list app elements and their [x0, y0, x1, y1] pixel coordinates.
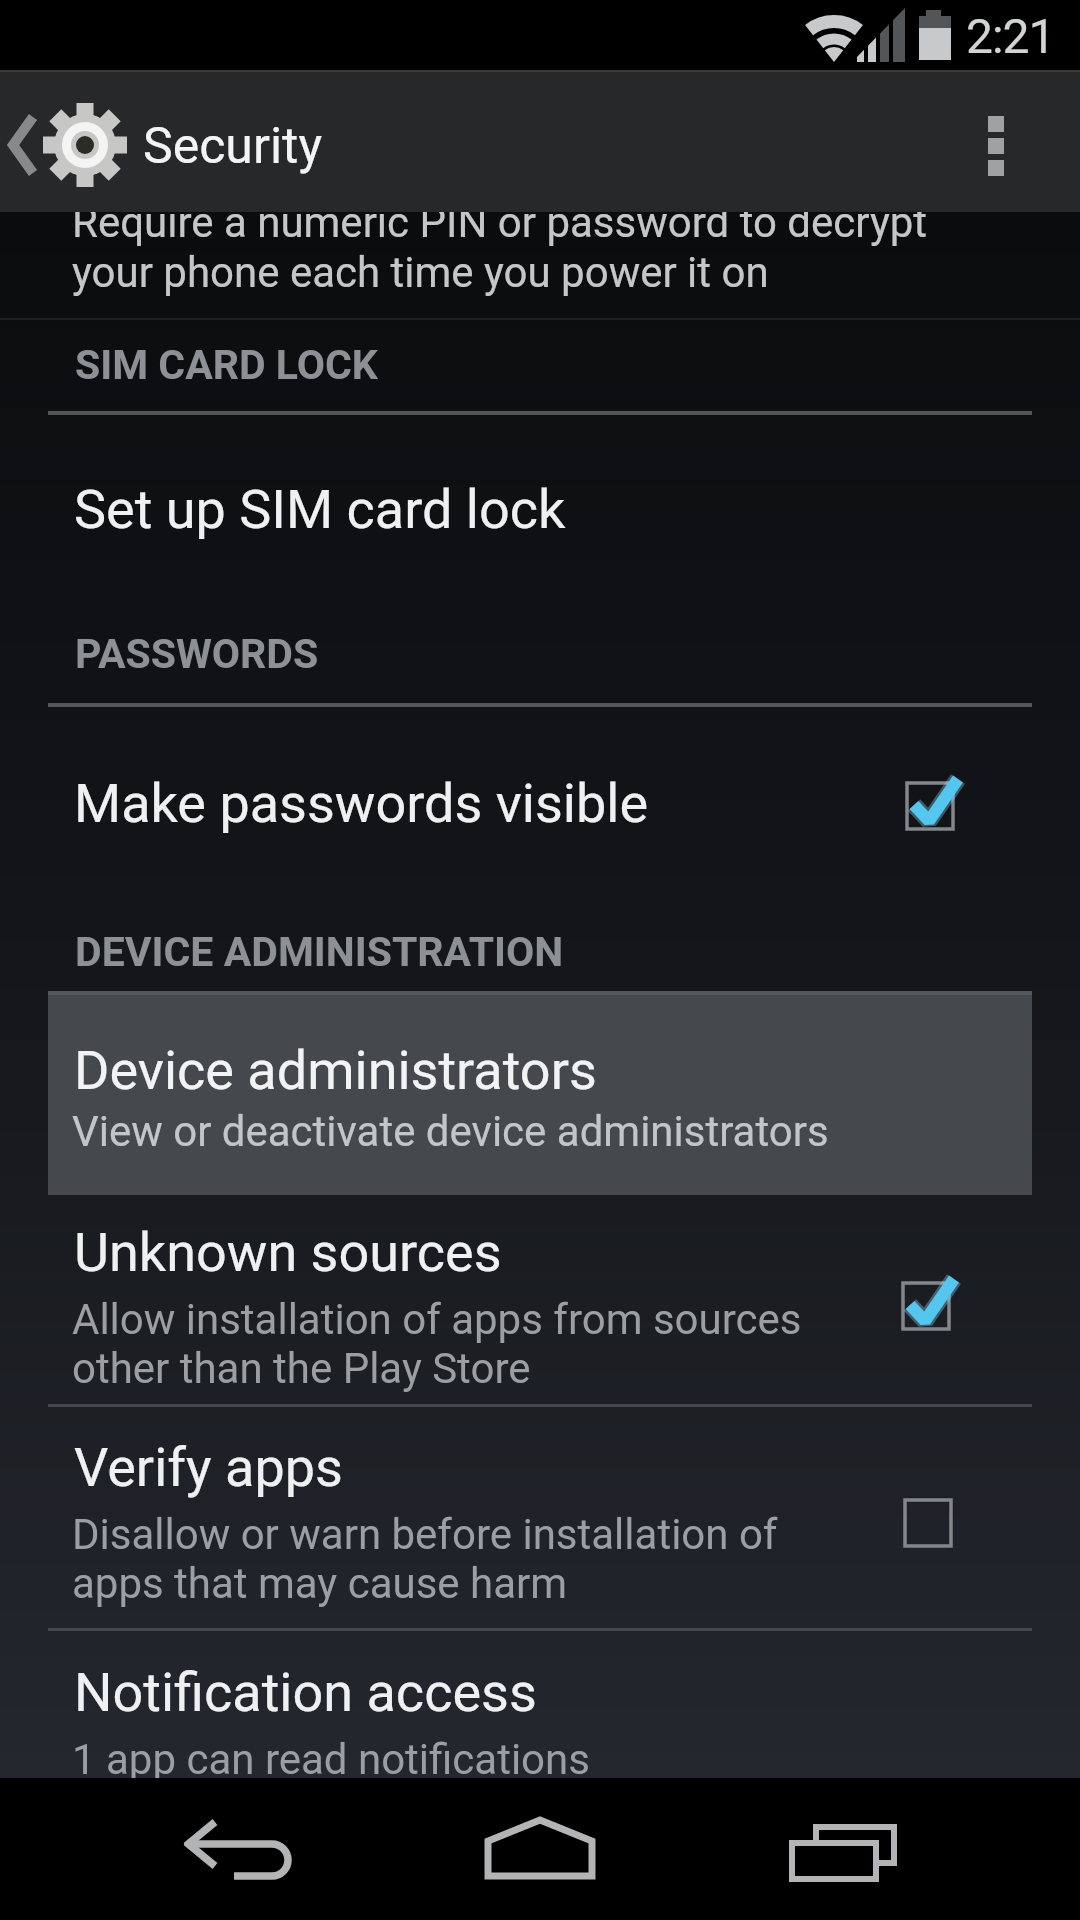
staticText: 1 app can read notifications [72, 1735, 590, 1784]
button[interactable] [780, 1815, 910, 1890]
staticText: Security [143, 117, 323, 176]
staticText: 2:21 [966, 8, 1055, 64]
staticText: Require a numeric PIN or password to dec… [72, 198, 928, 297]
staticText: Verify apps [74, 1436, 343, 1499]
staticText: Notification access [74, 1661, 537, 1724]
button[interactable]: Device administrators [48, 995, 1032, 1195]
button[interactable] [895, 760, 975, 840]
staticText: Device administrators [74, 1039, 597, 1102]
staticText: Allow installation of apps from sources … [72, 1295, 802, 1393]
staticText: Set up SIM card lock [74, 478, 566, 541]
staticText: DEVICE ADMINISTRATION [75, 928, 564, 976]
button[interactable] [980, 110, 1012, 172]
button[interactable] [170, 1810, 310, 1890]
button[interactable] [891, 1260, 971, 1340]
staticText: Disallow or warn before installation of … [72, 1510, 778, 1608]
staticText: View or deactivate device administrators [72, 1107, 829, 1156]
button[interactable]: Make passwords visible [0, 715, 1080, 895]
button[interactable] [480, 1814, 600, 1884]
staticText: Make passwords visible [74, 772, 649, 835]
button[interactable]: Notification access [0, 1636, 1080, 1778]
button[interactable]: Verify apps [0, 1412, 1080, 1626]
button[interactable] [893, 1477, 973, 1557]
staticText: Unknown sources [74, 1221, 502, 1284]
button[interactable]: Unknown sources [0, 1205, 1080, 1403]
button[interactable]: Set up SIM card lock [0, 430, 1080, 620]
button[interactable] [0, 70, 140, 212]
staticText: PASSWORDS [75, 630, 319, 678]
staticText: SIM CARD LOCK [75, 341, 378, 389]
